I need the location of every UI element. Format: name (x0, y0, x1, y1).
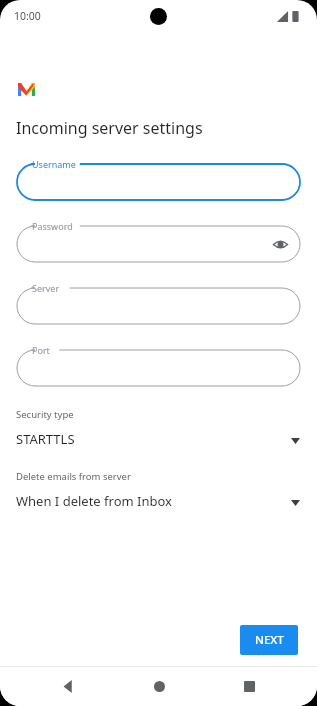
button[interactable]: Server (17, 280, 300, 324)
staticText: NEXT (255, 632, 284, 648)
staticText: 10:00 (14, 9, 41, 23)
staticText: Port (32, 344, 50, 356)
staticText: Delete emails from server (16, 470, 131, 483)
button[interactable]: Show password (269, 233, 291, 255)
button[interactable]: Port (17, 342, 300, 386)
staticText: Incoming server settings (16, 117, 203, 139)
staticText: STARTTLS (16, 430, 75, 448)
button[interactable]: Home (136, 666, 182, 706)
button[interactable]: Password (17, 218, 300, 262)
button[interactable]: NEXT (240, 625, 298, 655)
button[interactable]: Recent apps (226, 666, 272, 706)
button[interactable]: Delete emails from server (0, 470, 317, 510)
staticText: Security type (16, 408, 74, 421)
button[interactable]: Security type (0, 408, 317, 448)
staticText: Server (32, 282, 60, 294)
button[interactable]: Back (45, 666, 91, 706)
staticText: Password (32, 220, 73, 232)
button[interactable]: Username (17, 156, 300, 200)
staticText: When I delete from Inbox (16, 492, 172, 510)
staticText: Username (32, 158, 76, 170)
